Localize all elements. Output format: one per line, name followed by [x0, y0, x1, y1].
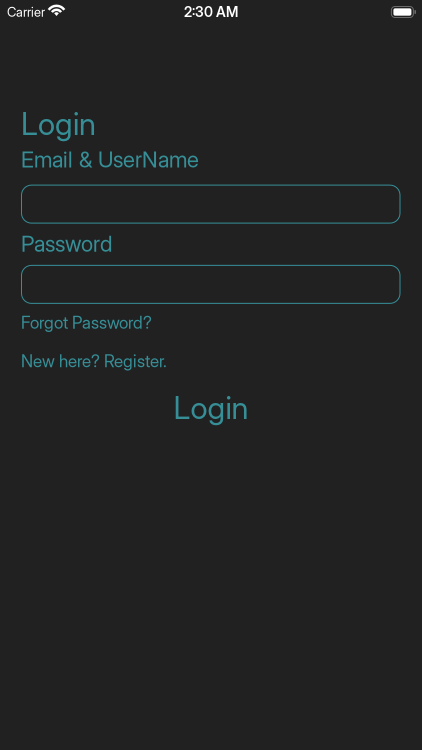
button[interactable]: Password secure field — [21, 265, 400, 303]
button[interactable]: Email & UserName text field — [21, 185, 400, 223]
button[interactable]: Login — [173, 389, 248, 426]
staticText: Login — [21, 105, 96, 142]
staticText: Login — [173, 389, 248, 426]
staticText: Carrier — [7, 4, 45, 20]
button[interactable]: New here? Register. — [21, 351, 167, 371]
staticText: Email & UserName — [21, 147, 199, 173]
staticText: Forgot Password? — [21, 312, 152, 333]
staticText: New here? Register. — [21, 351, 167, 371]
staticText: Password — [21, 231, 112, 257]
button[interactable]: Forgot Password? — [21, 312, 152, 333]
staticText: 2:30 AM — [184, 4, 238, 20]
